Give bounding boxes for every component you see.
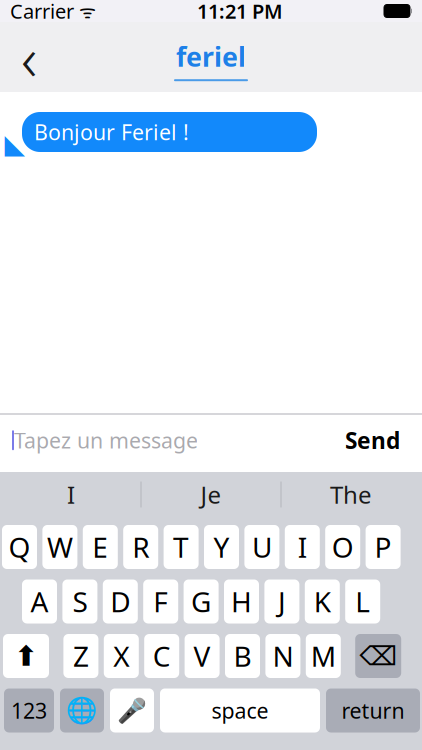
- staticText: A: [30, 583, 48, 620]
- staticText: I: [298, 528, 307, 566]
- button[interactable]: N: [265, 634, 300, 678]
- staticText: feriel: [176, 39, 246, 74]
- staticText: O: [332, 528, 354, 566]
- button[interactable]: X: [104, 634, 139, 678]
- button[interactable]: I: [285, 525, 320, 569]
- button[interactable]: V: [185, 634, 220, 678]
- staticText: ⬆: [14, 640, 37, 672]
- staticText: 123: [11, 696, 47, 725]
- staticText: R: [132, 528, 149, 566]
- staticText: Carrier: [10, 0, 74, 24]
- button[interactable]: Je: [141, 472, 280, 517]
- staticText: Z: [73, 637, 89, 675]
- button[interactable]: E: [83, 525, 118, 569]
- button[interactable]: T: [164, 525, 199, 569]
- button[interactable]: P: [366, 525, 401, 569]
- button[interactable]: Dictation: [110, 688, 154, 732]
- button[interactable]: B: [225, 634, 260, 678]
- staticText: E: [92, 528, 108, 566]
- button[interactable]: C: [144, 634, 179, 678]
- button[interactable]: space: [160, 688, 320, 732]
- staticText: N: [272, 637, 293, 675]
- staticText: Y: [213, 528, 229, 566]
- staticText: ⌫: [359, 641, 397, 671]
- staticText: S: [72, 583, 87, 620]
- button[interactable]: H: [224, 579, 259, 623]
- staticText: B: [233, 637, 251, 675]
- button[interactable]: F: [143, 579, 178, 623]
- button[interactable]: K: [305, 579, 340, 623]
- staticText: H: [231, 583, 252, 620]
- staticText: ᯤ: [74, 0, 96, 23]
- staticText: C: [153, 637, 171, 675]
- staticText: P: [375, 528, 392, 566]
- staticText: The: [330, 479, 372, 510]
- button[interactable]: O: [325, 525, 360, 569]
- staticText: W: [47, 528, 73, 566]
- button[interactable]: L: [345, 579, 380, 623]
- button[interactable]: U: [244, 525, 279, 569]
- staticText: G: [191, 583, 211, 620]
- staticText: K: [314, 583, 331, 620]
- staticText: Je: [200, 479, 221, 510]
- staticText: J: [278, 583, 286, 620]
- staticText: X: [113, 637, 129, 675]
- staticText: 🌐: [66, 696, 98, 725]
- staticText: L: [355, 583, 370, 620]
- staticText: Tapez un message: [14, 426, 198, 454]
- button[interactable]: Q: [2, 525, 37, 569]
- staticText: F: [153, 583, 168, 620]
- button[interactable]: M: [306, 634, 341, 678]
- button[interactable]: 123: [4, 688, 54, 732]
- button[interactable]: Send: [337, 419, 408, 461]
- button[interactable]: G: [184, 579, 219, 623]
- staticText: 11:21 PM: [197, 0, 283, 24]
- button[interactable]: Y: [204, 525, 239, 569]
- staticText: D: [110, 583, 130, 620]
- button[interactable]: R: [123, 525, 158, 569]
- staticText: space: [211, 696, 268, 725]
- button[interactable]: A: [22, 579, 57, 623]
- staticText: ◣: [4, 129, 25, 159]
- staticText: Q: [8, 528, 30, 566]
- button[interactable]: The: [281, 472, 420, 517]
- staticText: 🎤: [117, 697, 147, 724]
- button[interactable]: S: [62, 579, 97, 623]
- button[interactable]: return: [326, 688, 420, 732]
- button[interactable]: W: [42, 525, 77, 569]
- staticText: M: [311, 637, 336, 675]
- button[interactable]: Z: [63, 634, 98, 678]
- staticText: T: [173, 528, 189, 566]
- button[interactable]: Back: [0, 26, 58, 88]
- button[interactable]: J: [264, 579, 299, 623]
- button[interactable]: Next keyboard: [60, 688, 104, 732]
- staticText: I: [67, 479, 75, 510]
- staticText: return: [341, 696, 404, 725]
- staticText: ‹: [21, 16, 37, 98]
- staticText: V: [194, 637, 211, 675]
- staticText: U: [252, 528, 272, 566]
- button[interactable]: Shift: [3, 634, 49, 678]
- staticText: Send: [345, 425, 400, 455]
- staticText: Bonjour Feriel !: [34, 118, 189, 146]
- button[interactable]: I: [1, 472, 140, 517]
- button[interactable]: Delete: [355, 634, 401, 678]
- button[interactable]: D: [103, 579, 138, 623]
